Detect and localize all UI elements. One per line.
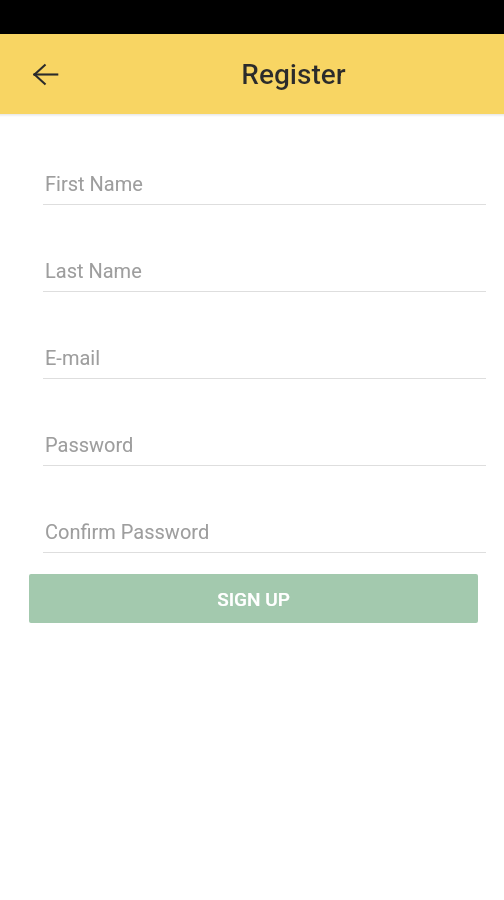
staticText: Last Name [45, 259, 142, 282]
button[interactable]: SIGN UP [29, 574, 478, 623]
staticText: SIGN UP [217, 588, 290, 610]
button[interactable]: First Name [0, 117, 504, 205]
button[interactable]: E-mail [0, 292, 504, 379]
staticText: Register [241, 58, 346, 91]
button[interactable]: Confirm Password [0, 466, 504, 553]
button[interactable]: Navigate back [21, 50, 69, 98]
staticText: E-mail [45, 346, 101, 369]
staticText: Password [45, 433, 134, 456]
staticText: First Name [45, 172, 143, 195]
button[interactable]: Last Name [0, 205, 504, 292]
staticText: Confirm Password [45, 520, 210, 543]
button[interactable]: Password [0, 379, 504, 466]
